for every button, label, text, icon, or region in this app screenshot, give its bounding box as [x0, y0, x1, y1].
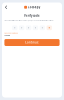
staticText: Cocoapy [28, 5, 40, 9]
button[interactable]: Change [4, 35, 10, 36]
staticText: Change [4, 35, 10, 36]
button[interactable]: Back [4, 4, 8, 10]
staticText: Verify code [24, 14, 40, 17]
staticText: We sent a 6-digit verification code to +… [4, 20, 53, 21]
staticText: Continue [25, 41, 39, 44]
staticText: Resend code in 0:42 [4, 32, 18, 34]
button[interactable]: Continue [4, 39, 60, 46]
